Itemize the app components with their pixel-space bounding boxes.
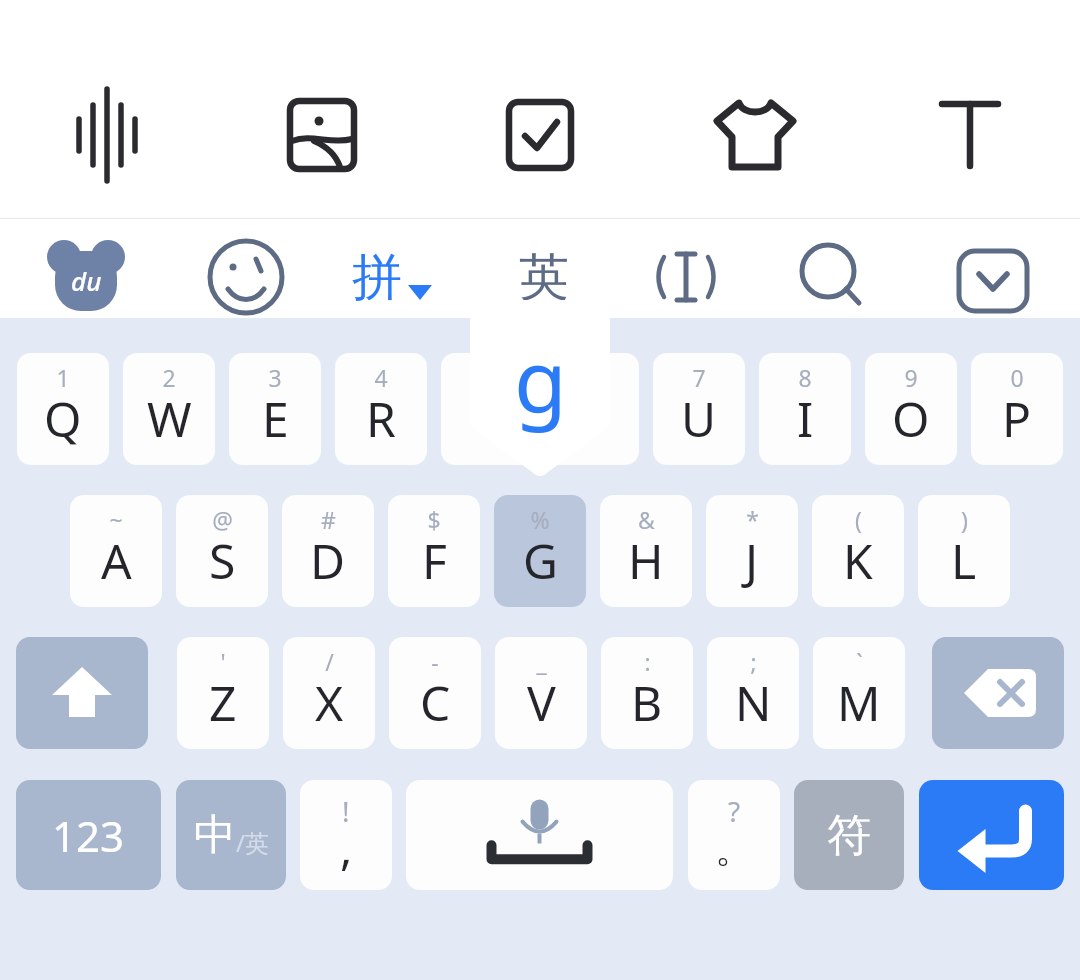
button[interactable]: 9 [865,353,957,465]
button[interactable]: 8 [759,353,851,465]
button[interactable]: Voice [62,90,152,180]
button[interactable]: ; [707,637,799,749]
staticText: 0 [1010,362,1024,393]
staticText: Z [209,670,237,735]
button[interactable]: Space [406,780,673,890]
button[interactable]: Checklist [495,90,585,180]
button[interactable]: Hide keyboard [955,243,1031,319]
staticText: ' [220,646,226,677]
staticText: K [843,528,873,593]
staticText: 8 [798,362,812,393]
button[interactable]: 0 [971,353,1063,465]
button[interactable]: Search [792,236,874,318]
staticText: B [631,670,663,735]
staticText: V [527,670,556,735]
staticText: - [431,646,439,677]
staticText: & [638,504,655,535]
button[interactable]: : [601,637,693,749]
staticText: C [420,670,451,735]
button[interactable]: 7 [653,353,745,465]
button[interactable]: Chinese English toggle [176,780,286,890]
staticText: M [837,670,881,735]
button[interactable]: 拼 [352,238,462,316]
staticText: ! [342,792,350,830]
button[interactable]: Image [277,90,367,180]
button[interactable]: _ [495,637,587,749]
button[interactable]: 6 [547,353,639,465]
staticText: ; [750,646,757,677]
button[interactable]: Shift [16,637,148,749]
staticText: @ [212,504,233,535]
staticText: P [1002,386,1032,451]
staticText: 3 [268,362,282,393]
staticText: I [797,386,814,451]
staticText: S [209,528,236,593]
button[interactable]: # [282,495,374,607]
staticText: 。 [715,825,753,873]
button[interactable]: ~ [70,495,162,607]
button[interactable]: @ [176,495,268,607]
staticText: N [735,670,772,735]
staticText: 1 [56,362,70,393]
staticText: _ [536,646,547,677]
staticText: L [951,528,977,593]
staticText: F [422,528,447,593]
button[interactable]: ( [812,495,904,607]
staticText: W [147,386,192,451]
button[interactable]: 英 [505,238,583,316]
staticText: 中 [194,809,236,862]
staticText: ` [856,646,863,677]
staticText: D [310,528,346,593]
staticText: 9 [904,362,918,393]
staticText: ? [728,792,741,830]
button[interactable]: ? [688,780,780,890]
button[interactable]: ' [177,637,269,749]
button[interactable]: $ [388,495,480,607]
staticText: $ [427,504,441,535]
button[interactable]: Enter [919,780,1064,890]
button[interactable]: Text [925,90,1015,180]
button[interactable]: / [283,637,375,749]
button[interactable]: 4 [335,353,427,465]
button[interactable]: Symbols [794,780,904,890]
button[interactable]: 3 [229,353,321,465]
button[interactable]: 123 [16,780,161,890]
staticText: R [366,386,396,451]
button[interactable]: Move cursor [645,236,727,318]
staticText: 2 [162,362,176,393]
staticText: du [71,263,102,298]
button[interactable]: % [494,495,586,607]
staticText: g [514,320,567,437]
button[interactable]: ! [300,780,392,890]
button[interactable]: * [706,495,798,607]
button[interactable]: Baidu [42,233,130,321]
staticText: ~ [109,504,123,535]
staticText: E [262,386,289,451]
staticText: / [325,646,334,677]
button[interactable]: & [600,495,692,607]
staticText: U [681,386,717,451]
button[interactable]: Backspace [932,637,1064,749]
staticText: ( [855,504,862,535]
button[interactable]: Skin [710,90,800,180]
staticText: G [523,528,558,593]
staticText: , [340,816,353,879]
button[interactable]: ) [918,495,1010,607]
button[interactable]: 5 [441,353,533,465]
staticText: A [101,528,132,593]
button[interactable]: - [389,637,481,749]
staticText: 4 [374,362,388,393]
button[interactable]: 2 [123,353,215,465]
staticText: % [530,504,550,535]
button[interactable]: 1 [17,353,109,465]
staticText: : [644,646,651,677]
button[interactable]: ` [813,637,905,749]
button[interactable]: Emoji [202,233,290,321]
staticText: 符 [827,808,871,863]
staticText: O [892,386,930,451]
staticText: J [745,528,759,593]
